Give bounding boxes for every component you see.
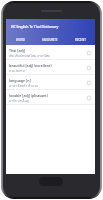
button[interactable]: FAVOURITE xyxy=(35,35,65,45)
staticText: น่ารัก น่าเอ็นดู xyxy=(9,98,29,103)
button[interactable]: Favourite xyxy=(84,93,94,103)
staticText: สวย งดงาม xyxy=(9,68,25,73)
button[interactable]: Favourite xyxy=(84,48,94,58)
staticText: HC English To Thai Dictionary xyxy=(11,24,59,29)
staticText: FAVOURITE xyxy=(42,38,58,42)
staticText: RECENT xyxy=(75,38,86,42)
staticText: Thai [adj] xyxy=(9,48,25,53)
staticText: lovable [adj] (pleasant) xyxy=(9,93,48,98)
button[interactable]: WORD xyxy=(6,35,35,45)
button[interactable]: RECENT xyxy=(65,35,95,45)
staticText: beautiful [adj] (excellent) xyxy=(9,63,52,68)
button[interactable]: Favourite xyxy=(84,78,94,88)
button[interactable]: Thai [adj] xyxy=(6,45,95,60)
button[interactable]: Favourite xyxy=(84,63,94,73)
button[interactable]: beautiful [adj] (excellent) xyxy=(6,60,95,75)
staticText: เกี่ยวกับประเทศไทย ภาษาไทย xyxy=(9,53,51,58)
staticText: WORD xyxy=(16,38,25,42)
staticText: ภาษา ถ้อยคำ สำนวน xyxy=(9,83,38,88)
button[interactable]: language [n] xyxy=(6,75,95,90)
staticText: language [n] xyxy=(9,78,31,83)
button[interactable]: lovable [adj] (pleasant) xyxy=(6,90,95,105)
